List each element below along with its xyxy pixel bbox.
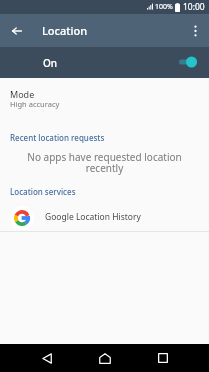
button[interactable]: Back bbox=[28, 344, 65, 372]
staticText: High accuracy bbox=[10, 99, 60, 109]
staticText: 100% bbox=[155, 2, 173, 12]
staticText: Location services bbox=[10, 186, 76, 197]
staticText: Location bbox=[42, 23, 88, 38]
button[interactable]: More options bbox=[181, 14, 209, 47]
button[interactable]: Navigate up bbox=[0, 14, 33, 47]
button[interactable]: Google Location History bbox=[0, 197, 209, 231]
button[interactable]: Recent apps bbox=[144, 344, 181, 372]
staticText: On bbox=[43, 56, 58, 70]
button[interactable]: On bbox=[0, 47, 209, 78]
button[interactable]: Home bbox=[86, 344, 123, 372]
staticText: Recent location requests bbox=[10, 132, 105, 143]
staticText: 10:00 bbox=[183, 1, 205, 13]
staticText: Google Location History bbox=[45, 211, 141, 223]
staticText: Mode bbox=[10, 88, 35, 100]
staticText: No apps have requested location recently bbox=[26, 150, 183, 175]
button[interactable]: Mode bbox=[0, 78, 209, 116]
